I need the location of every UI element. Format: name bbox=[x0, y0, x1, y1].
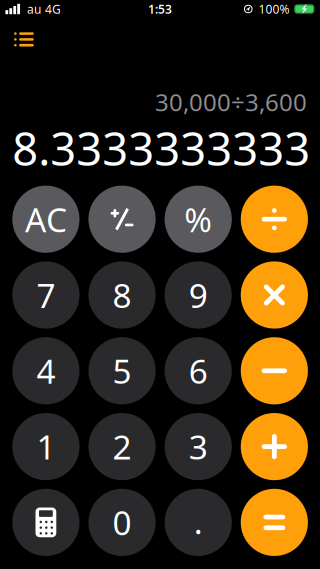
staticText: 8.3333333333 bbox=[12, 118, 310, 178]
staticText: % bbox=[184, 197, 212, 241]
button[interactable]: . bbox=[165, 489, 232, 556]
button[interactable]: 3 bbox=[165, 413, 232, 480]
staticText: 100% bbox=[258, 1, 289, 17]
button[interactable]: Multiply bbox=[241, 261, 308, 329]
staticText: 30,000÷3,600 bbox=[155, 86, 307, 118]
staticText: 1:53 bbox=[148, 1, 172, 17]
staticText: . bbox=[194, 499, 203, 544]
staticText: 2 bbox=[113, 424, 132, 469]
staticText: 4 bbox=[36, 349, 55, 393]
button[interactable]: 6 bbox=[165, 337, 232, 404]
staticText: 1 bbox=[36, 424, 55, 469]
staticText: 3 bbox=[189, 424, 208, 469]
button[interactable]: 7 bbox=[12, 261, 79, 329]
button[interactable]: Divide bbox=[241, 186, 308, 253]
button[interactable]: Keypad bbox=[12, 489, 79, 556]
button[interactable]: AC bbox=[12, 186, 79, 253]
staticText: 4G bbox=[45, 1, 61, 17]
staticText: 6 bbox=[189, 349, 208, 393]
staticText: 7 bbox=[36, 273, 55, 317]
button[interactable]: 1 bbox=[12, 413, 79, 480]
staticText: 5 bbox=[113, 349, 132, 393]
button[interactable]: 5 bbox=[88, 337, 156, 404]
button[interactable]: 4 bbox=[12, 337, 79, 404]
button[interactable]: History bbox=[0, 26, 56, 60]
button[interactable]: 8 bbox=[88, 261, 156, 329]
button[interactable]: % bbox=[165, 186, 232, 253]
button[interactable]: Equals bbox=[241, 489, 308, 556]
staticText: 9 bbox=[189, 273, 208, 317]
button[interactable]: 0 bbox=[88, 489, 156, 556]
staticText: 0 bbox=[113, 500, 132, 545]
button[interactable]: Toggle sign bbox=[88, 186, 156, 253]
staticText: AC bbox=[25, 197, 67, 241]
button[interactable]: 9 bbox=[165, 261, 232, 329]
staticText: 8 bbox=[113, 273, 132, 317]
button[interactable]: Minus bbox=[241, 337, 308, 404]
staticText: au bbox=[27, 1, 41, 17]
button[interactable]: Plus bbox=[241, 413, 308, 480]
button[interactable]: 2 bbox=[88, 413, 156, 480]
